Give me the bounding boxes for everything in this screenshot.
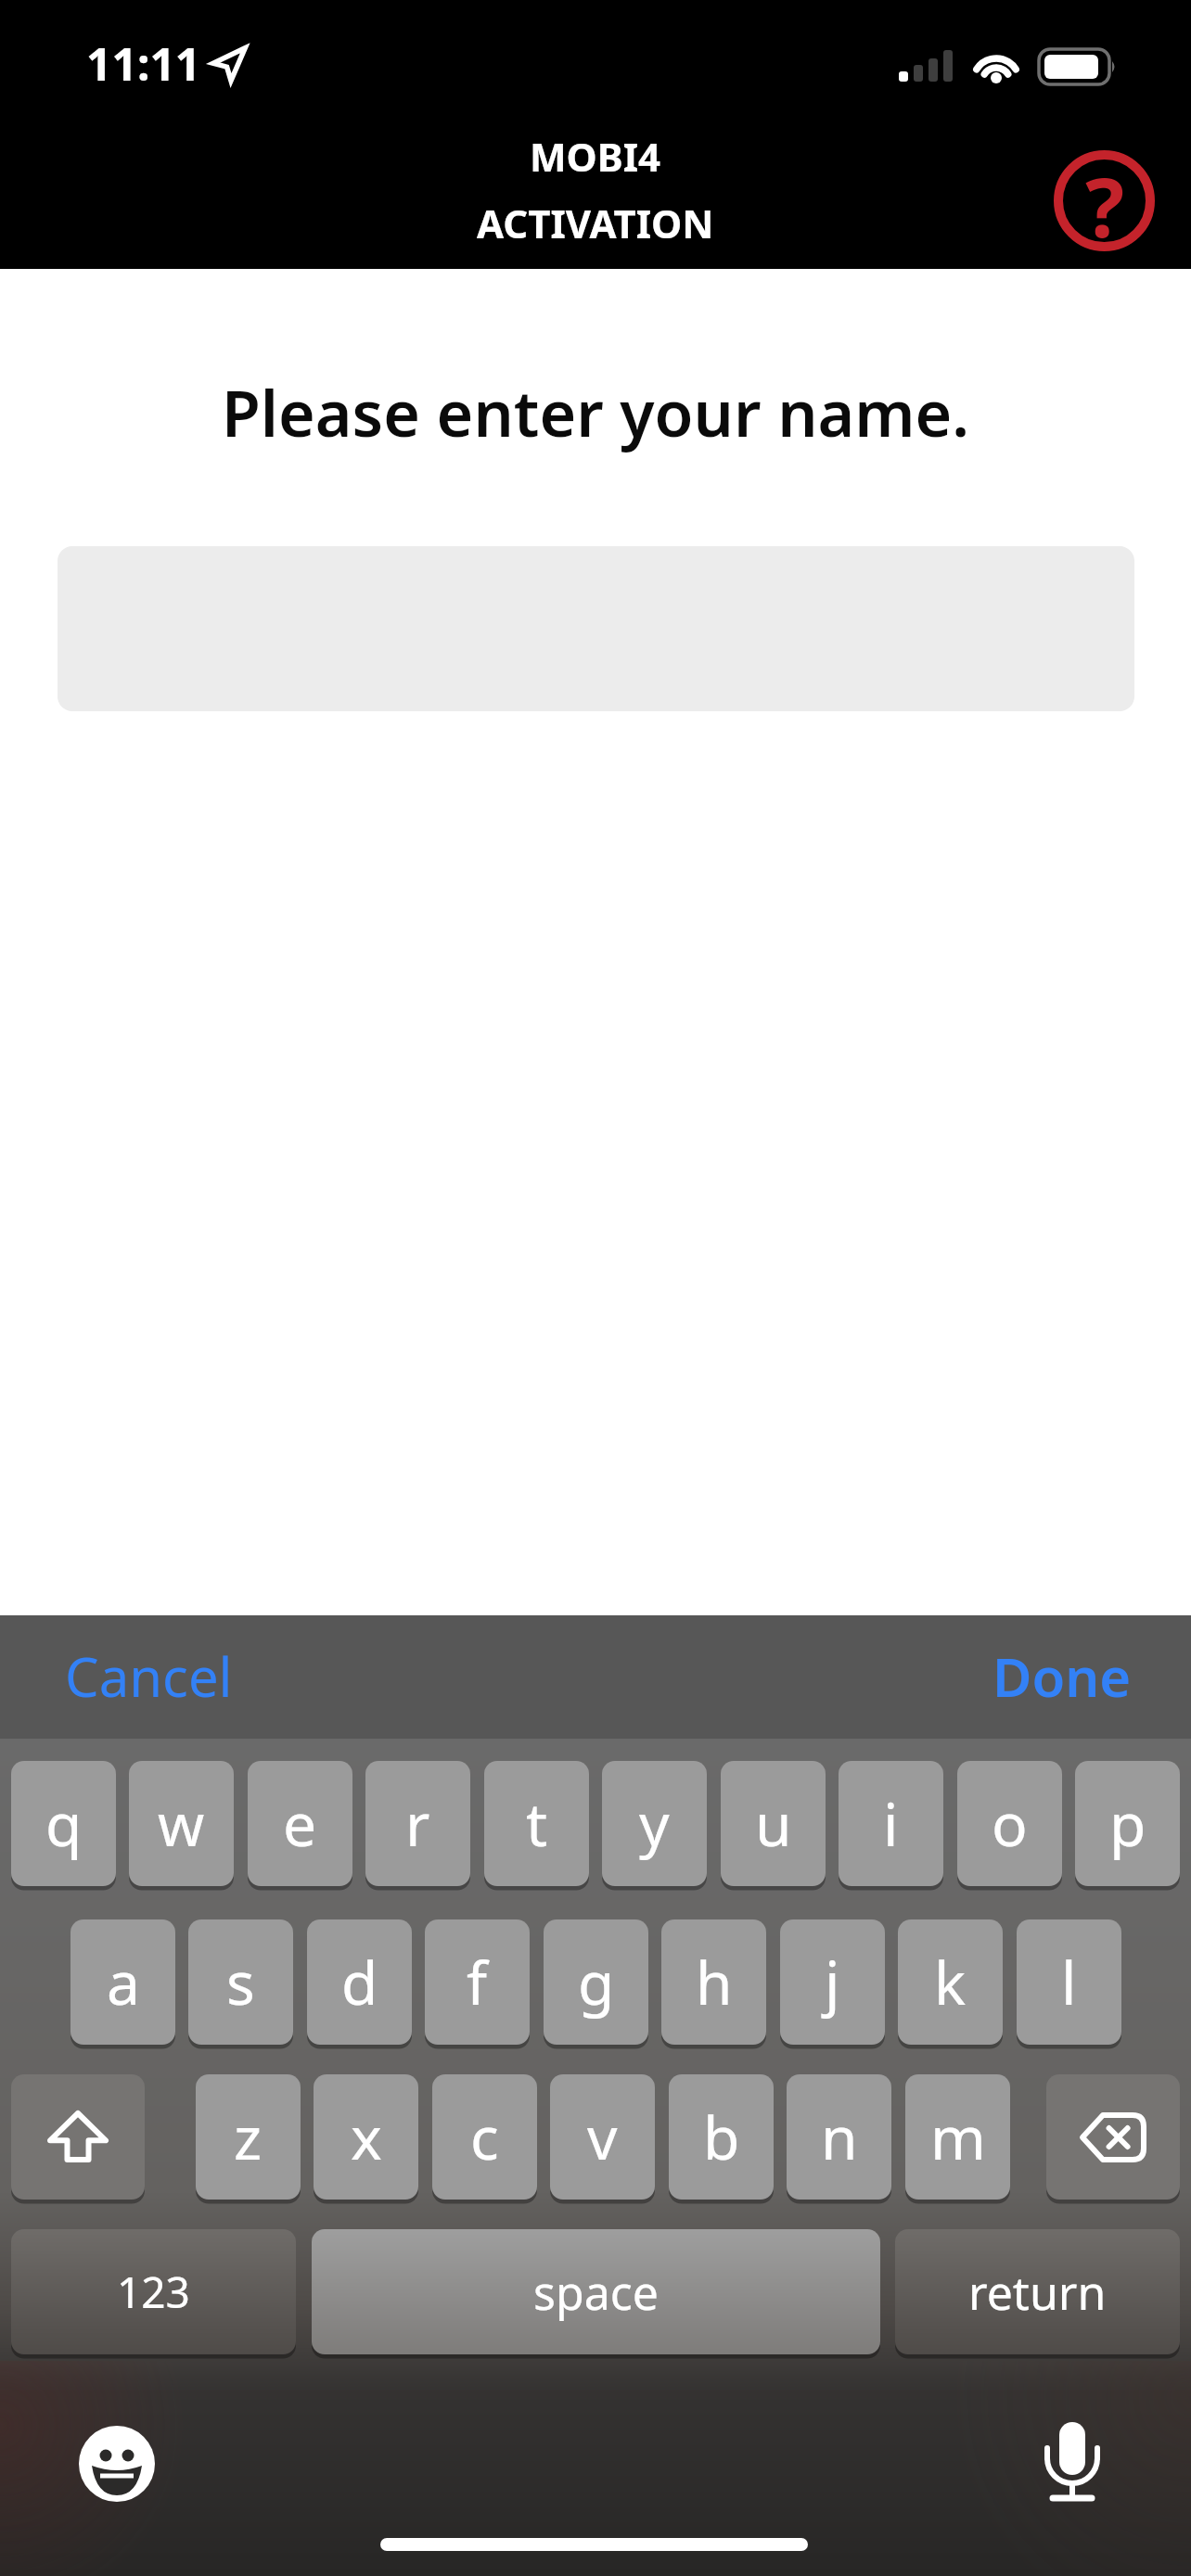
- staticText: i: [883, 1783, 899, 1864]
- staticText: r: [405, 1783, 430, 1864]
- button[interactable]: Cancel: [37, 1625, 260, 1727]
- staticText: Done: [992, 1639, 1132, 1713]
- staticText: t: [526, 1783, 548, 1864]
- button[interactable]: o: [957, 1761, 1062, 1886]
- button[interactable]: return: [895, 2229, 1180, 2354]
- button[interactable]: l: [1017, 1919, 1121, 2045]
- button[interactable]: [11, 2074, 145, 2200]
- button[interactable]: [70, 2417, 163, 2510]
- staticText: o: [992, 1783, 1028, 1864]
- button[interactable]: m: [905, 2074, 1010, 2200]
- staticText: c: [470, 2097, 499, 2177]
- button[interactable]: t: [484, 1761, 589, 1886]
- staticText: u: [755, 1783, 792, 1864]
- button[interactable]: d: [307, 1919, 412, 2045]
- button[interactable]: e: [248, 1761, 352, 1886]
- staticText: q: [45, 1783, 83, 1864]
- button[interactable]: [1046, 2074, 1180, 2200]
- staticText: z: [234, 2097, 263, 2177]
- staticText: x: [351, 2097, 382, 2177]
- button[interactable]: c: [432, 2074, 537, 2200]
- staticText: w: [158, 1783, 205, 1864]
- button[interactable]: space: [312, 2229, 880, 2354]
- staticText: h: [696, 1942, 733, 2022]
- button[interactable]: k: [898, 1919, 1003, 2045]
- button[interactable]: u: [721, 1761, 826, 1886]
- staticText: b: [703, 2097, 740, 2177]
- button[interactable]: Done: [965, 1625, 1159, 1727]
- button[interactable]: j: [780, 1919, 885, 2045]
- button[interactable]: z: [196, 2074, 301, 2200]
- staticText: MOBI4: [530, 130, 661, 178]
- staticText: a: [107, 1942, 140, 2022]
- button[interactable]: a: [70, 1919, 175, 2045]
- button[interactable]: r: [365, 1761, 470, 1886]
- staticText: y: [639, 1783, 670, 1864]
- button[interactable]: s: [188, 1919, 293, 2045]
- staticText: d: [341, 1942, 378, 2022]
- staticText: ACTIVATION: [477, 197, 714, 245]
- staticText: j: [825, 1942, 840, 2022]
- staticText: ?: [1085, 150, 1124, 251]
- staticText: e: [283, 1783, 317, 1864]
- staticText: l: [1061, 1942, 1077, 2022]
- button[interactable]: f: [425, 1919, 530, 2045]
- button[interactable]: q: [11, 1761, 116, 1886]
- staticText: v: [587, 2097, 618, 2177]
- staticText: k: [934, 1942, 967, 2022]
- staticText: return: [968, 2261, 1107, 2324]
- button[interactable]: w: [129, 1761, 234, 1886]
- staticText: Please enter your name.: [222, 369, 970, 454]
- button[interactable]: g: [544, 1919, 648, 2045]
- button[interactable]: i: [839, 1761, 943, 1886]
- button[interactable]: h: [661, 1919, 766, 2045]
- staticText: space: [533, 2261, 659, 2324]
- staticText: g: [578, 1942, 615, 2022]
- staticText: 123: [117, 2263, 190, 2321]
- staticText: p: [1109, 1783, 1146, 1864]
- staticText: n: [821, 2097, 858, 2177]
- staticText: s: [226, 1942, 255, 2022]
- button[interactable]: [1026, 2406, 1119, 2518]
- staticText: 11:11: [86, 33, 201, 89]
- staticText: Cancel: [65, 1639, 233, 1713]
- staticText: f: [467, 1942, 488, 2022]
- button[interactable]: y: [602, 1761, 707, 1886]
- button[interactable]: b: [669, 2074, 774, 2200]
- button[interactable]: ?: [1054, 150, 1155, 251]
- staticText: m: [930, 2097, 986, 2177]
- button[interactable]: v: [550, 2074, 655, 2200]
- button[interactable]: x: [314, 2074, 418, 2200]
- button[interactable]: p: [1075, 1761, 1180, 1886]
- button[interactable]: n: [787, 2074, 891, 2200]
- button[interactable]: 123: [11, 2229, 296, 2354]
